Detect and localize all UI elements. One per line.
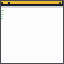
button[interactable]: Menu <box>1 2 3 4</box>
button[interactable] <box>1 10 63 11</box>
button[interactable] <box>1 14 63 15</box>
button[interactable] <box>1 16 63 17</box>
button[interactable] <box>1 18 63 19</box>
button[interactable]: More options <box>62 1 63 4</box>
button[interactable] <box>1 12 63 13</box>
